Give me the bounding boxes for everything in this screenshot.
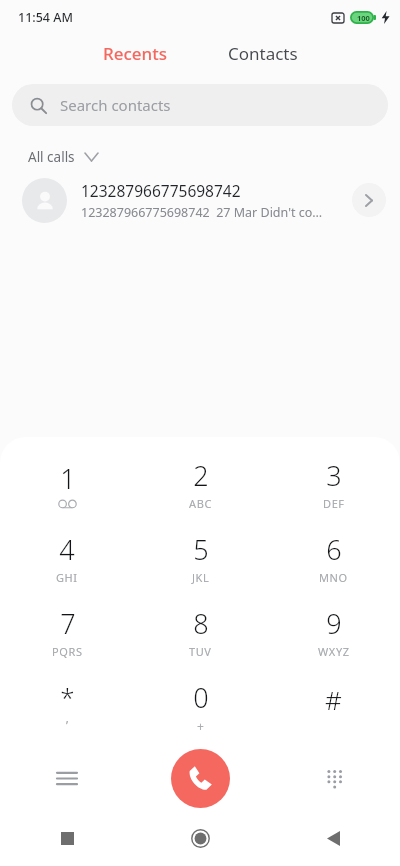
staticText: Search contacts <box>60 95 171 115</box>
button[interactable]: Call details <box>352 183 386 217</box>
button[interactable]: Search contacts <box>12 84 388 126</box>
button[interactable]: Contacts <box>214 38 312 69</box>
staticText: PQRS <box>52 644 83 659</box>
button[interactable]: * <box>0 669 134 743</box>
staticText: 0 <box>193 679 209 716</box>
button[interactable]: 7 <box>0 595 134 669</box>
staticText: 2 <box>193 457 209 494</box>
button[interactable]: 3 <box>267 447 400 521</box>
staticText: JKL <box>192 570 210 585</box>
staticText: 8 <box>193 605 209 642</box>
staticText: 3 <box>326 457 342 494</box>
button[interactable]: 6 <box>267 521 400 595</box>
staticText: 9 <box>326 605 342 642</box>
staticText: 11:54 AM <box>18 9 73 26</box>
staticText: # <box>325 682 342 717</box>
staticText: 4 <box>59 531 75 568</box>
staticText: All calls <box>28 148 75 166</box>
staticText: ABC <box>189 496 212 511</box>
button[interactable]: 1 <box>0 447 134 521</box>
button[interactable]: All calls <box>26 144 100 170</box>
staticText: * <box>60 679 75 714</box>
button[interactable]: 4 <box>0 521 134 595</box>
staticText: 123287966775698742 <box>81 180 241 201</box>
button[interactable]: Home <box>134 810 267 866</box>
staticText: WXYZ <box>318 644 350 659</box>
button[interactable]: # <box>267 669 400 743</box>
staticText: 123287966775698742 27 Mar Didn't co… <box>81 204 323 221</box>
button[interactable]: Recent apps <box>0 810 134 866</box>
staticText: 6 <box>326 531 342 568</box>
staticText: 1 <box>60 460 76 497</box>
button[interactable]: Back <box>267 810 400 866</box>
staticText: 5 <box>193 531 209 568</box>
staticText: 7 <box>60 605 76 642</box>
button[interactable]: 123287966775698742 <box>0 170 400 230</box>
staticText: TUV <box>189 644 212 659</box>
button[interactable]: 9 <box>267 595 400 669</box>
button[interactable]: 0 <box>134 669 267 743</box>
staticText: Contacts <box>228 42 298 65</box>
staticText: Recents <box>103 42 168 65</box>
staticText: + <box>197 718 205 734</box>
button[interactable]: 8 <box>134 595 267 669</box>
button[interactable]: Recents <box>89 38 182 69</box>
button[interactable]: More options <box>0 747 134 810</box>
staticText: MNO <box>319 570 348 585</box>
staticText: ’ <box>66 717 69 733</box>
button[interactable]: Call <box>171 749 230 808</box>
button[interactable]: Keypad <box>267 747 400 810</box>
button[interactable]: 5 <box>134 521 267 595</box>
staticText: 100 <box>357 13 370 23</box>
staticText: DEF <box>323 496 345 511</box>
button[interactable]: 2 <box>134 447 267 521</box>
staticText: GHI <box>56 570 78 585</box>
